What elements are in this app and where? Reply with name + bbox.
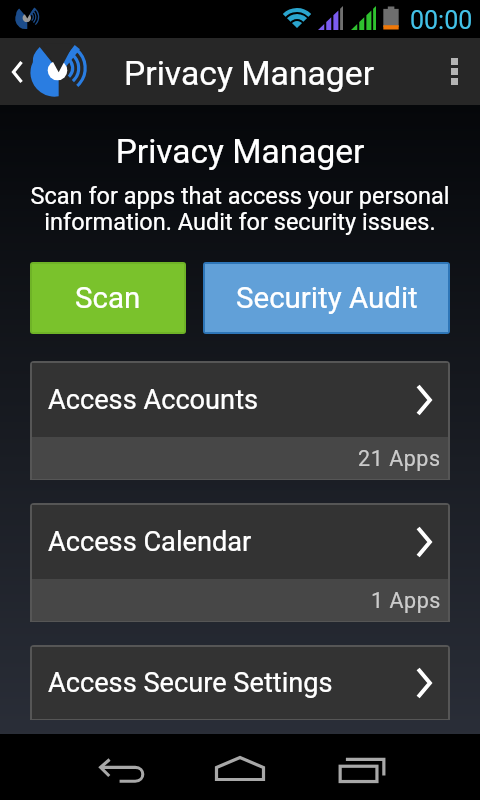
- button[interactable]: Home: [180, 734, 300, 800]
- staticText: Access Accounts: [48, 384, 259, 416]
- button[interactable]: Access Secure Settings: [30, 645, 450, 720]
- staticText: 00:00: [410, 6, 473, 35]
- button[interactable]: Navigate up: [0, 38, 96, 105]
- button[interactable]: Security Audit: [205, 264, 448, 332]
- staticText: Security Audit: [236, 281, 418, 316]
- staticText: Privacy Manager: [124, 54, 375, 93]
- button[interactable]: More options: [428, 38, 480, 105]
- staticText: Access Secure Settings: [48, 667, 333, 699]
- button[interactable]: Access Calendar: [30, 503, 450, 622]
- staticText: Access Calendar: [48, 526, 252, 558]
- button[interactable]: Back: [60, 734, 180, 800]
- button[interactable]: Recent apps: [300, 734, 420, 800]
- staticText: 21 Apps: [358, 446, 441, 471]
- staticText: Scan: [75, 281, 141, 316]
- staticText: Scan for apps that access your personal …: [16, 182, 464, 236]
- staticText: 1 Apps: [371, 588, 441, 613]
- staticText: Privacy Manager: [0, 132, 480, 171]
- button[interactable]: Access Accounts: [30, 361, 450, 480]
- button[interactable]: Scan: [32, 264, 184, 332]
